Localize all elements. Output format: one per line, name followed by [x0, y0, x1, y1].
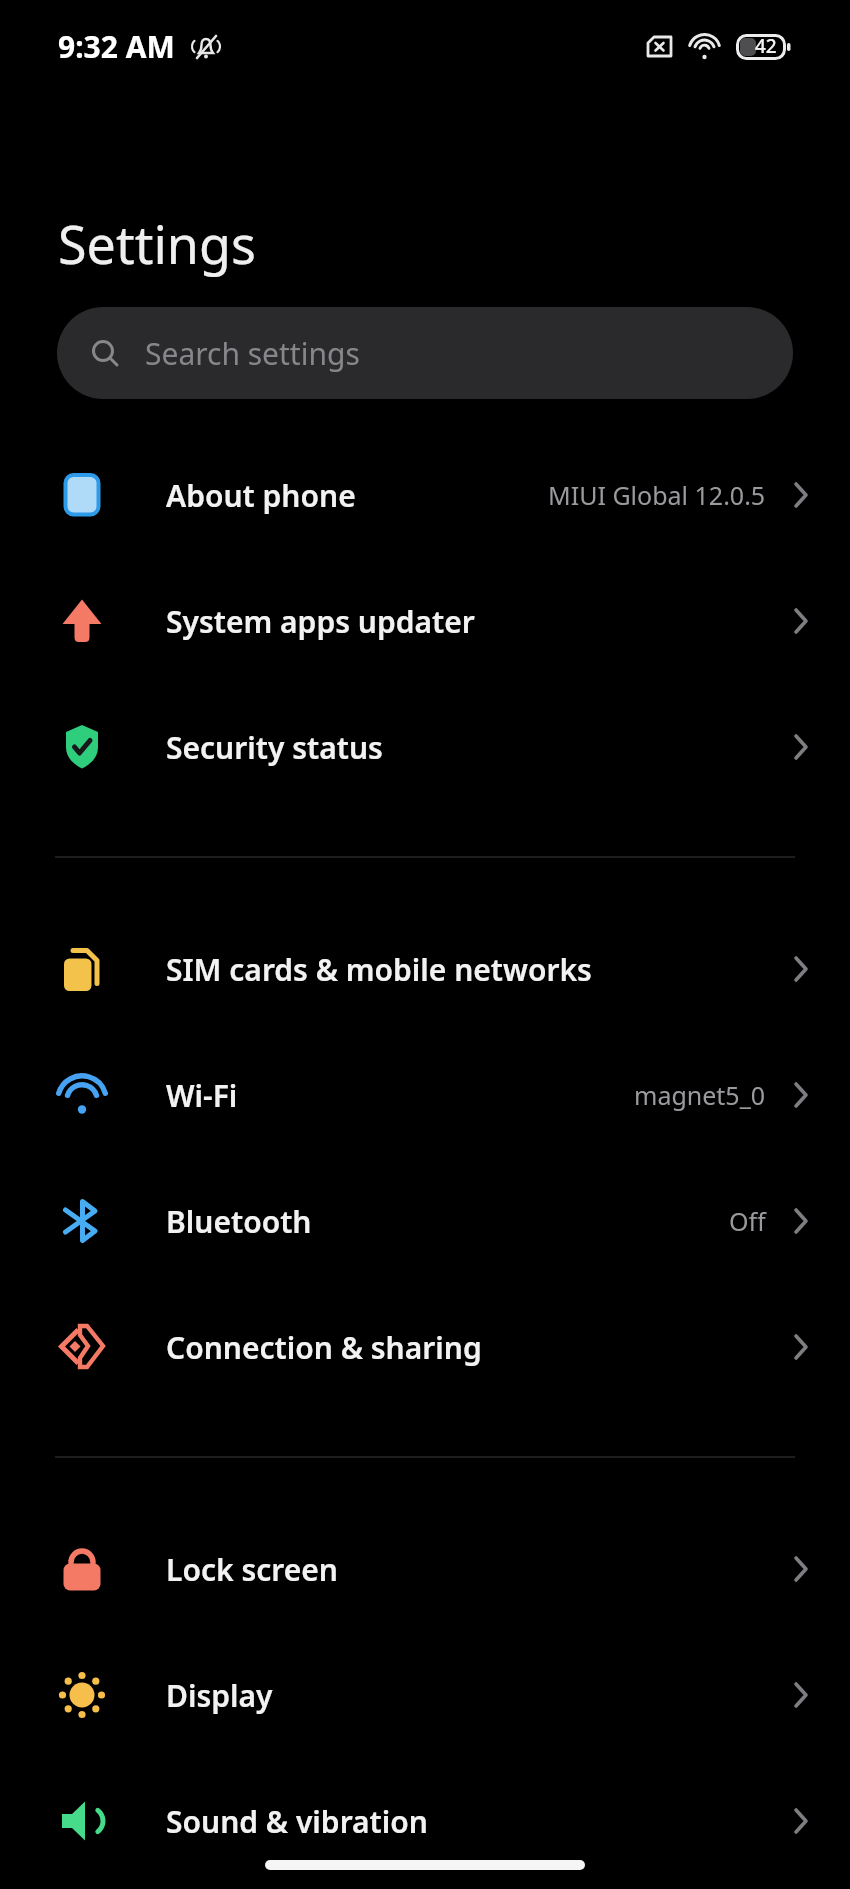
staticText: Off: [729, 1204, 766, 1238]
staticText: Bluetooth: [166, 1201, 312, 1242]
button[interactable]: Security status: [0, 684, 850, 810]
staticText: Display: [166, 1675, 273, 1716]
button[interactable]: Sound & vibration: [0, 1758, 850, 1884]
staticText: System apps updater: [166, 601, 475, 642]
staticText: 9:32 AM: [58, 26, 175, 67]
button[interactable]: Bluetooth: [0, 1158, 850, 1284]
button[interactable]: About phone: [0, 432, 850, 558]
button[interactable]: Connection & sharing: [0, 1284, 850, 1410]
button[interactable]: Display: [0, 1632, 850, 1758]
staticText: Security status: [166, 727, 383, 768]
staticText: Sound & vibration: [166, 1801, 428, 1842]
button[interactable]: Lock screen: [0, 1506, 850, 1632]
button[interactable]: Wi-Fi: [0, 1032, 850, 1158]
staticText: Connection & sharing: [166, 1327, 482, 1368]
staticText: About phone: [166, 475, 356, 516]
staticText: MIUI Global 12.0.5: [548, 478, 766, 512]
button[interactable]: Search settings: [57, 307, 793, 399]
button[interactable]: SIM cards & mobile networks: [0, 906, 850, 1032]
staticText: Settings: [58, 208, 256, 279]
staticText: Search settings: [145, 333, 360, 374]
button[interactable]: System apps updater: [0, 558, 850, 684]
staticText: 42: [755, 33, 777, 59]
staticText: SIM cards & mobile networks: [166, 949, 592, 990]
staticText: magnet5_0: [634, 1078, 766, 1112]
staticText: Lock screen: [166, 1549, 338, 1590]
staticText: Wi-Fi: [166, 1075, 238, 1116]
